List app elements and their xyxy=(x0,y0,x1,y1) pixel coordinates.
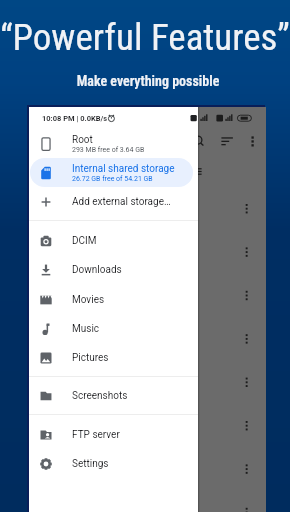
staticText: Add external storage… xyxy=(72,196,171,208)
button[interactable]: Add external storage… xyxy=(29,187,198,216)
button[interactable]: Settings xyxy=(29,449,198,478)
staticText: 293 MB free of 3.64 GB xyxy=(72,146,145,154)
staticText: Internal shared storage xyxy=(72,163,175,175)
staticText: Downloads xyxy=(72,264,122,276)
button[interactable]: Sort xyxy=(219,134,235,150)
button[interactable]: More options xyxy=(245,134,261,150)
button[interactable]: Movies xyxy=(29,285,198,314)
staticText: Root xyxy=(72,134,93,146)
staticText: Make everything possible xyxy=(3,73,290,89)
button[interactable]: Screenshots xyxy=(29,381,198,410)
staticText: “Powerful Features” xyxy=(0,16,290,59)
staticText: Music xyxy=(72,323,100,335)
staticText: DCIM xyxy=(72,235,97,247)
button[interactable]: Search xyxy=(194,134,210,150)
button[interactable]: Root xyxy=(29,129,198,158)
staticText: 10:08 PM | 0.0KB/s xyxy=(42,114,108,123)
staticText: Movies xyxy=(72,294,105,306)
button[interactable]: FTP server xyxy=(29,420,198,449)
button[interactable]: Internal shared storage xyxy=(29,158,198,187)
button[interactable]: DCIM xyxy=(29,226,198,255)
staticText: Screenshots xyxy=(72,390,128,402)
staticText: Pictures xyxy=(72,352,109,364)
staticText: FTP server xyxy=(72,429,120,441)
staticText: 26.72 GB free of 54.21 GB xyxy=(72,175,153,183)
staticText: Settings xyxy=(72,458,109,470)
button[interactable]: Downloads xyxy=(29,255,198,284)
button[interactable]: Pictures xyxy=(29,343,198,372)
button[interactable]: Music xyxy=(29,314,198,343)
